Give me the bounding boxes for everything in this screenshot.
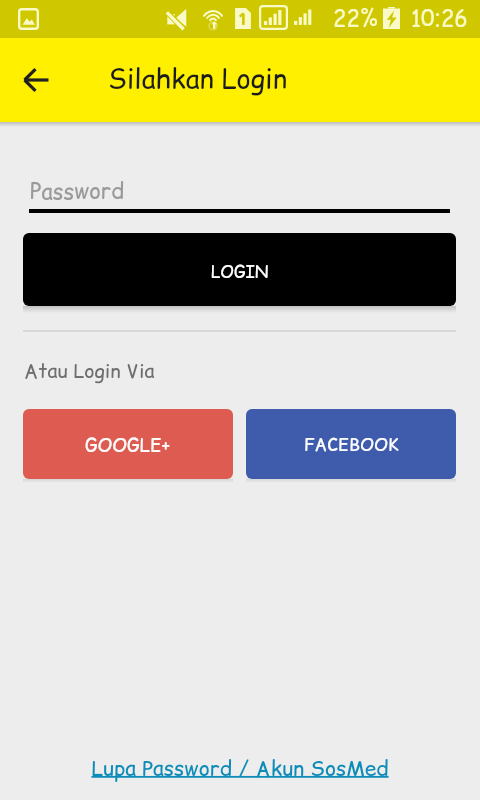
staticText: GOOGLE+ bbox=[85, 432, 171, 458]
button[interactable]: FACEBOOK bbox=[246, 409, 456, 479]
staticText: LOGIN bbox=[211, 260, 269, 284]
button[interactable]: Password bbox=[23, 166, 456, 213]
staticText: Password bbox=[30, 176, 125, 207]
button[interactable]: Lupa Password / Akun SosMed bbox=[91, 754, 389, 783]
button[interactable]: GOOGLE+ bbox=[23, 409, 233, 479]
staticText: Atau Login Via bbox=[24, 357, 155, 384]
button[interactable]: LOGIN bbox=[23, 233, 456, 306]
button[interactable]: Back bbox=[8, 52, 64, 108]
staticText: Lupa Password / Akun SosMed bbox=[91, 754, 389, 783]
staticText: Silahkan Login bbox=[108, 60, 287, 98]
staticText: 22% bbox=[333, 3, 378, 34]
staticText: 10:26 bbox=[411, 3, 468, 34]
staticText: FACEBOOK bbox=[304, 433, 399, 457]
